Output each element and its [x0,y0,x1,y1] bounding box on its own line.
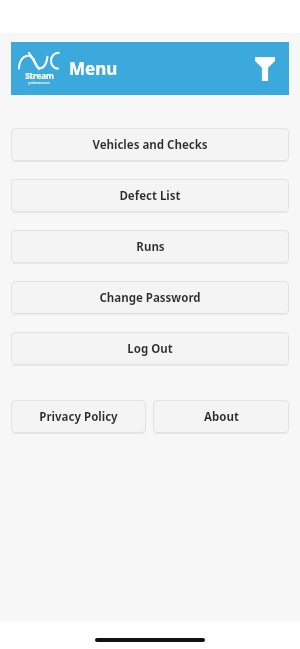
staticText: Menu [69,57,118,80]
button[interactable]: Change Password [11,281,289,314]
button[interactable]: Runs [11,230,289,263]
staticText: Log Out [127,341,173,357]
button[interactable]: Filter [245,49,285,89]
button[interactable]: Log Out [11,332,289,365]
button[interactable]: About [153,400,289,433]
staticText: Privacy Policy [39,409,118,425]
staticText: About [204,409,239,425]
button[interactable]: Defect List [11,179,289,212]
staticText: Vehicles and Checks [92,137,208,153]
staticText: Stream [25,70,54,81]
staticText: Runs [136,239,165,255]
staticText: getstream.com [28,81,50,85]
button[interactable]: Privacy Policy [11,400,146,433]
staticText: Defect List [119,188,181,204]
button[interactable]: Vehicles and Checks [11,128,289,161]
staticText: Change Password [99,290,201,306]
